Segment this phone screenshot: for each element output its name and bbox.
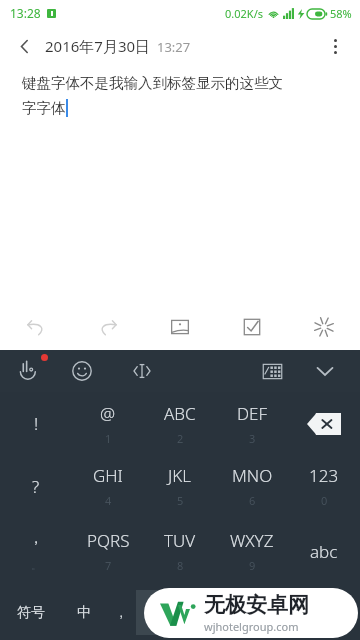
button[interactable]: ， (106, 585, 136, 640)
staticText: 0 (321, 493, 328, 508)
button[interactable]: Hide keyboard (308, 354, 342, 388)
button[interactable]: DEF (216, 392, 288, 455)
staticText: PQRS (87, 529, 130, 552)
staticText: ! (34, 412, 39, 435)
staticText: 13:27 (157, 38, 191, 56)
button[interactable]: More options (316, 27, 354, 65)
button[interactable]: @ (72, 392, 144, 455)
staticText: @ (100, 402, 116, 425)
staticText: 无极安卓网 (204, 592, 309, 618)
button[interactable]: PQRS (72, 517, 144, 585)
button[interactable]: GHI (72, 455, 144, 517)
button[interactable]: Handwriting (14, 355, 46, 387)
staticText: abc (310, 540, 338, 563)
button[interactable]: Checklist (216, 304, 288, 350)
staticText: ? (32, 475, 40, 498)
button[interactable]: abc (288, 517, 360, 585)
button[interactable]: Effects (288, 304, 360, 350)
staticText: 58% (330, 6, 352, 21)
staticText: 字字体 (22, 99, 66, 117)
staticText: wjhotelgroup.com (204, 619, 299, 634)
button[interactable]: 符号 (0, 585, 62, 640)
staticText: 6 (249, 493, 256, 508)
staticText: WXYZ (230, 529, 274, 552)
staticText: 键盘字体不是我输入到标签显示的这些文 (22, 74, 283, 92)
button[interactable]: JKL (144, 455, 216, 517)
button[interactable]: Emoji (66, 355, 98, 387)
staticText: JKL (168, 464, 192, 487)
staticText: MNO (232, 464, 273, 487)
staticText: 符号 (17, 604, 45, 622)
button[interactable]: 中 (62, 585, 106, 640)
button[interactable]: ABC (144, 392, 216, 455)
staticText: 13:28 (10, 5, 41, 21)
staticText: 9 (249, 558, 256, 573)
staticText: 0.02K/s (225, 6, 263, 21)
button[interactable]: Back (6, 28, 42, 64)
staticText: GHI (93, 464, 123, 487)
button[interactable]: Keyboard layout (256, 355, 288, 387)
staticText: 2 (177, 431, 184, 446)
staticText: 123 (309, 464, 339, 487)
button[interactable]: ! (0, 392, 72, 455)
staticText: 8 (177, 558, 184, 573)
button[interactable]: ? (0, 455, 72, 517)
button[interactable]: Insert image (144, 304, 216, 350)
button[interactable]: MNO (216, 455, 288, 517)
staticText: ， (115, 605, 127, 620)
button[interactable]: Enter (302, 585, 360, 640)
staticText: 中 (77, 604, 91, 622)
staticText: TUV (164, 529, 196, 552)
staticText: 4 (105, 493, 112, 508)
staticText: 2016年7月30日 (45, 36, 151, 56)
button[interactable]: Undo (0, 304, 72, 350)
button[interactable]: Move cursor (126, 355, 158, 387)
button[interactable]: Redo (72, 304, 144, 350)
button[interactable]: 123 (288, 455, 360, 517)
button[interactable]: Backspace (288, 392, 360, 455)
staticText: 3 (249, 431, 256, 446)
staticText: DEF (237, 402, 268, 425)
staticText: 1 (105, 431, 112, 446)
button[interactable]: Space (136, 590, 302, 635)
staticText: 7 (105, 558, 112, 573)
staticText: 5 (177, 493, 184, 508)
staticText: ABC (164, 402, 196, 425)
staticText: ， (29, 530, 43, 548)
button[interactable]: ， (0, 517, 72, 585)
button[interactable]: TUV (144, 517, 216, 585)
button[interactable]: WXYZ (216, 517, 288, 585)
